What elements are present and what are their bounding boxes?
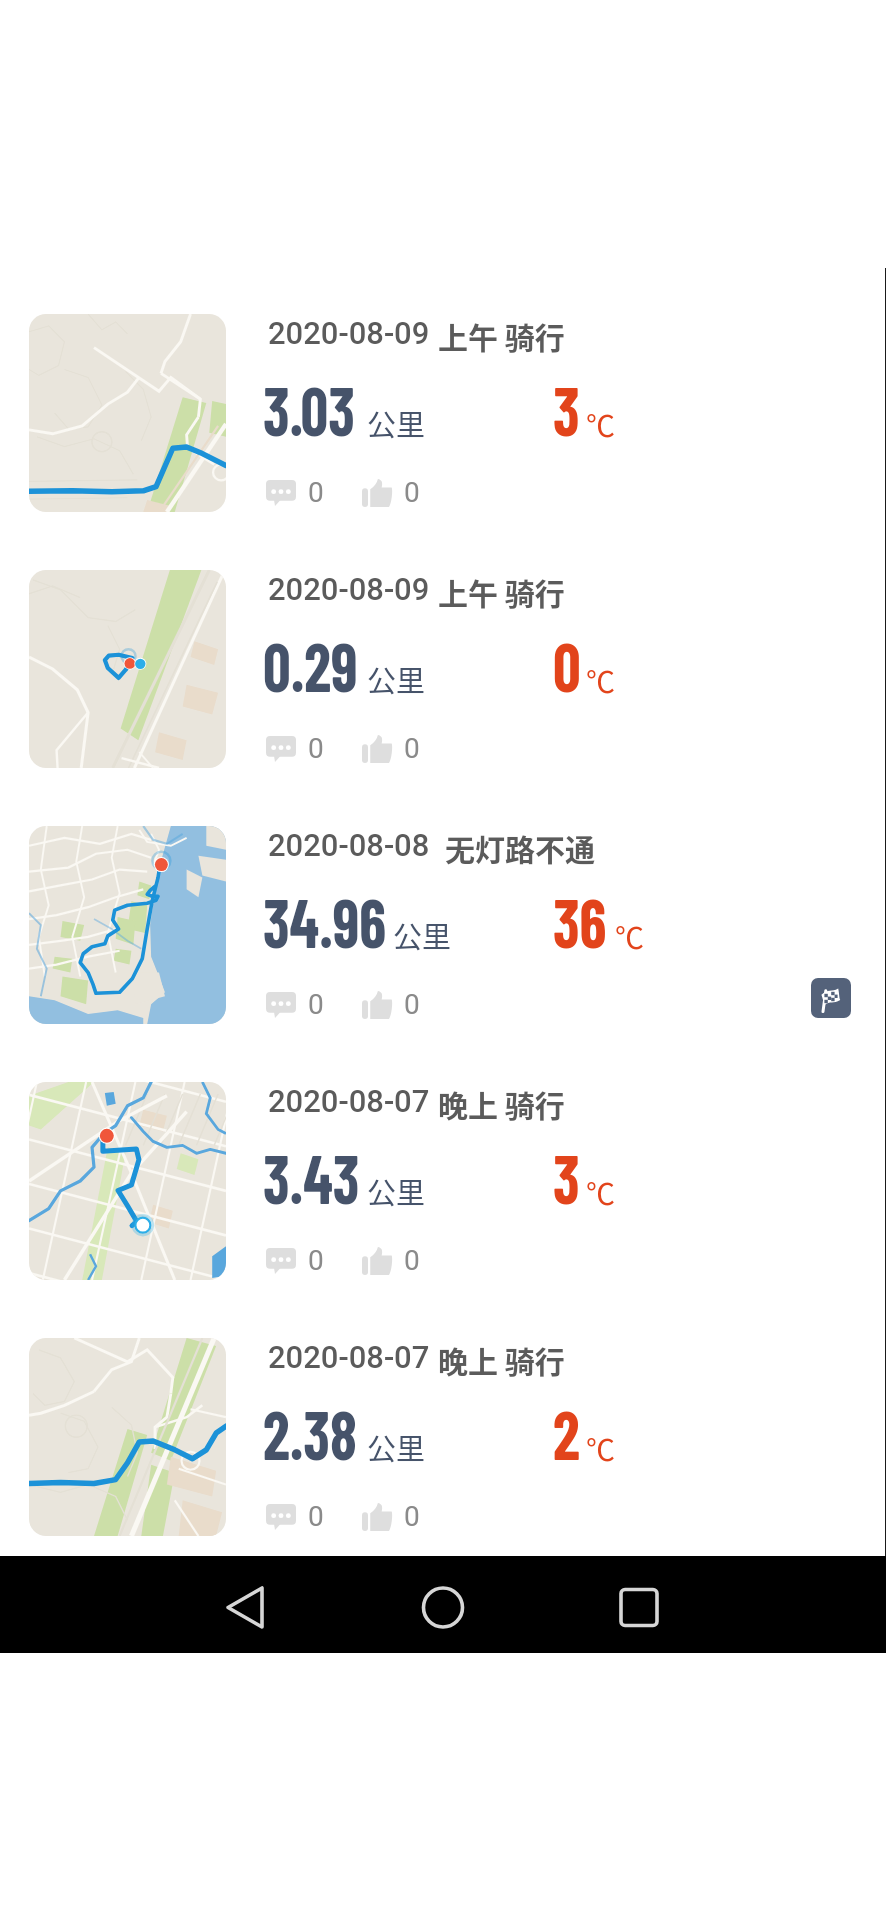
staticText: 3.43	[263, 1135, 359, 1218]
button[interactable]: Back	[197, 1556, 293, 1653]
button[interactable]: Likes	[362, 476, 420, 509]
button[interactable]: 2020-08-07	[0, 1082, 886, 1280]
staticText: 34.96	[263, 879, 387, 962]
staticText: ℃	[586, 403, 616, 445]
staticText: 无灯路不通	[445, 826, 595, 869]
staticText: ℃	[586, 1427, 616, 1469]
staticText: 0.29	[263, 623, 358, 706]
staticText: 0	[308, 1244, 324, 1277]
staticText: 公里	[367, 1170, 426, 1212]
staticText: 3	[553, 1135, 580, 1218]
staticText: 上午 骑行	[438, 570, 565, 613]
staticText: 公里	[367, 1426, 426, 1468]
button[interactable]: Comments	[266, 476, 324, 509]
staticText: 0	[404, 1244, 420, 1277]
staticText: 0	[553, 623, 581, 706]
button[interactable]: Finish flag	[811, 978, 851, 1018]
staticText: 上午 骑行	[438, 314, 565, 357]
button[interactable]: 2020-08-09	[0, 570, 886, 768]
button[interactable]: Likes	[362, 988, 420, 1021]
button[interactable]: Likes	[362, 732, 420, 765]
staticText: 0	[308, 1500, 324, 1533]
button[interactable]: Comments	[266, 1244, 324, 1277]
staticText: 公里	[367, 402, 426, 444]
staticText: 公里	[367, 658, 426, 700]
staticText: 2020-08-07	[268, 1339, 438, 1375]
staticText: 2020-08-07	[268, 1083, 438, 1119]
staticText: 2020-08-09	[268, 571, 438, 607]
button[interactable]: Comments	[266, 732, 324, 765]
button[interactable]: 2020-08-08	[0, 826, 886, 1024]
button[interactable]: Likes	[362, 1500, 420, 1533]
staticText: ℃	[586, 659, 616, 701]
button[interactable]: 2020-08-09	[0, 314, 886, 512]
staticText: 0	[404, 476, 420, 509]
staticText: 0	[308, 732, 324, 765]
staticText: 2020-08-08	[268, 827, 445, 863]
staticText: 0	[404, 732, 420, 765]
staticText: 0	[404, 988, 420, 1021]
staticText: 36	[553, 879, 607, 962]
button[interactable]: Home	[395, 1556, 491, 1653]
staticText: 0	[308, 476, 324, 509]
staticText: 2020-08-09	[268, 315, 438, 351]
button[interactable]: Likes	[362, 1244, 420, 1277]
staticText: 晚上 骑行	[438, 1338, 565, 1381]
staticText: 2	[553, 1391, 580, 1474]
staticText: 晚上 骑行	[438, 1082, 565, 1125]
button[interactable]: Comments	[266, 988, 324, 1021]
button[interactable]: Comments	[266, 1500, 324, 1533]
staticText: 0	[308, 988, 324, 1021]
staticText: 公里	[393, 914, 452, 956]
button[interactable]: Recent apps	[591, 1556, 687, 1653]
staticText: 2.38	[263, 1391, 358, 1474]
staticText: ℃	[615, 915, 645, 957]
button[interactable]: 2020-08-07	[0, 1338, 886, 1536]
staticText: 3.03	[263, 367, 355, 450]
staticText: 0	[404, 1500, 420, 1533]
staticText: 3	[553, 367, 580, 450]
staticText: ℃	[586, 1171, 616, 1213]
